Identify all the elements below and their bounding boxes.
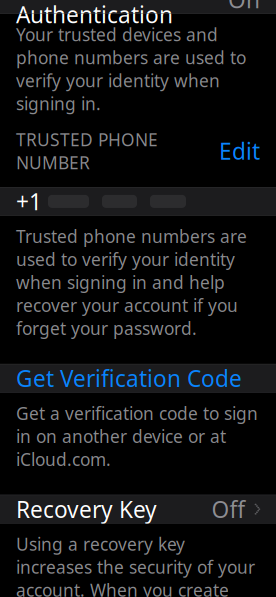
button[interactable]: +1 bbox=[0, 187, 276, 216]
button[interactable]: Get Verification Code bbox=[0, 364, 276, 393]
staticText: Get a verification code to sign in on an… bbox=[16, 402, 258, 471]
staticText: Edit bbox=[219, 136, 260, 166]
staticText: Using a recovery key increases the secur… bbox=[16, 532, 255, 597]
button[interactable]: Two-Factor Authentication bbox=[0, 0, 276, 14]
staticText: TRUSTED PHONE NUMBER bbox=[16, 128, 158, 174]
staticText: Off bbox=[212, 494, 246, 524]
staticText: Get Verification Code bbox=[16, 363, 242, 393]
staticText: Two-Factor Authentication bbox=[16, 0, 173, 30]
button[interactable]: Recovery Key bbox=[0, 495, 276, 523]
staticText: Your trusted devices and phone numbers a… bbox=[16, 23, 246, 115]
button[interactable]: Edit bbox=[219, 136, 260, 166]
staticText: +1 bbox=[16, 186, 42, 216]
staticText: Recovery Key bbox=[16, 494, 157, 524]
staticText: Trusted phone numbers are used to verify… bbox=[16, 225, 247, 340]
staticText: On bbox=[228, 0, 260, 15]
